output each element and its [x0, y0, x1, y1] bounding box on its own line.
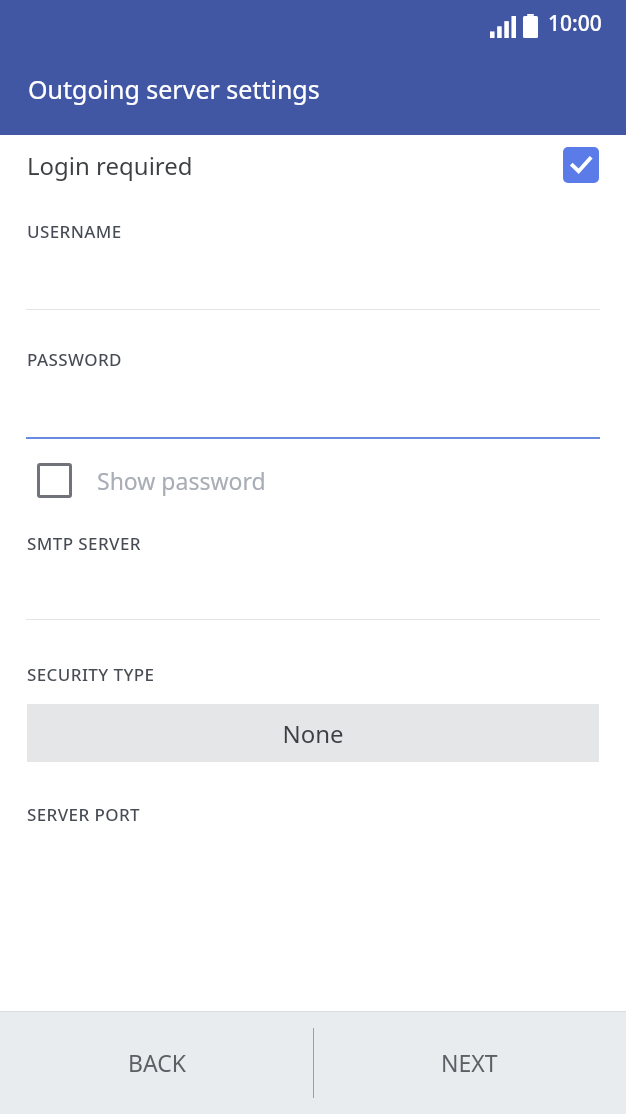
staticText: SERVER PORT [27, 803, 141, 826]
button[interactable]: BACK [0, 1011, 313, 1114]
staticText: Show password [97, 465, 266, 496]
staticText: 10:00 [548, 9, 602, 38]
staticText: SMTP SERVER [27, 532, 141, 555]
button[interactable]: Show password [37, 451, 266, 509]
staticText: NEXT [441, 1047, 498, 1078]
staticText: SECURITY TYPE [27, 663, 155, 686]
staticText: PASSWORD [27, 348, 122, 371]
staticText: Outgoing server settings [28, 72, 320, 106]
staticText: None [282, 717, 344, 750]
button[interactable]: Login required [0, 135, 626, 195]
staticText: USERNAME [27, 220, 122, 243]
staticText: BACK [128, 1047, 186, 1078]
button[interactable]: NEXT [313, 1011, 626, 1114]
other: Login required, checked [563, 147, 599, 183]
staticText: Login required [27, 149, 193, 182]
button[interactable]: None [27, 704, 599, 762]
